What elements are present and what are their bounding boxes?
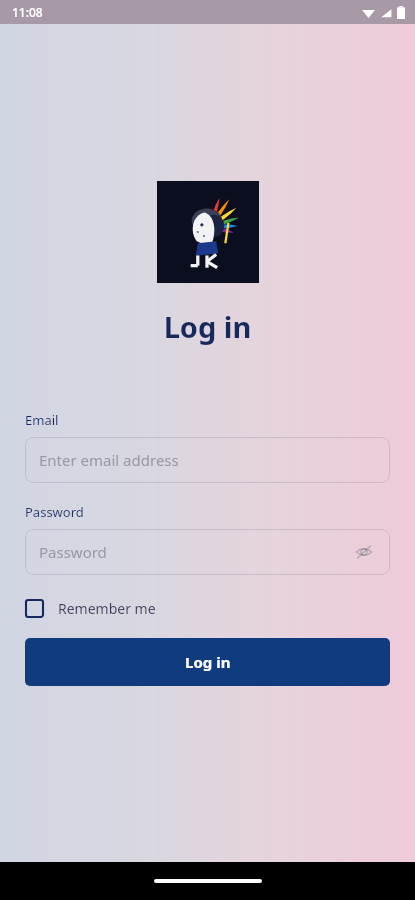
button[interactable]: Show password — [352, 540, 376, 564]
button[interactable]: Enter email address — [25, 437, 390, 483]
staticText: Email — [25, 411, 59, 429]
staticText: Enter email address — [39, 450, 179, 470]
button[interactable]: Password — [25, 529, 390, 575]
button[interactable]: Remember me — [25, 597, 156, 620]
staticText: Log in — [185, 652, 231, 672]
button[interactable]: Log in — [25, 638, 390, 686]
staticText: 11:08 — [12, 4, 43, 20]
staticText: Password — [39, 542, 107, 562]
staticText: Remember me — [58, 599, 156, 618]
staticText: Log in — [25, 307, 390, 346]
staticText: Password — [25, 503, 84, 521]
